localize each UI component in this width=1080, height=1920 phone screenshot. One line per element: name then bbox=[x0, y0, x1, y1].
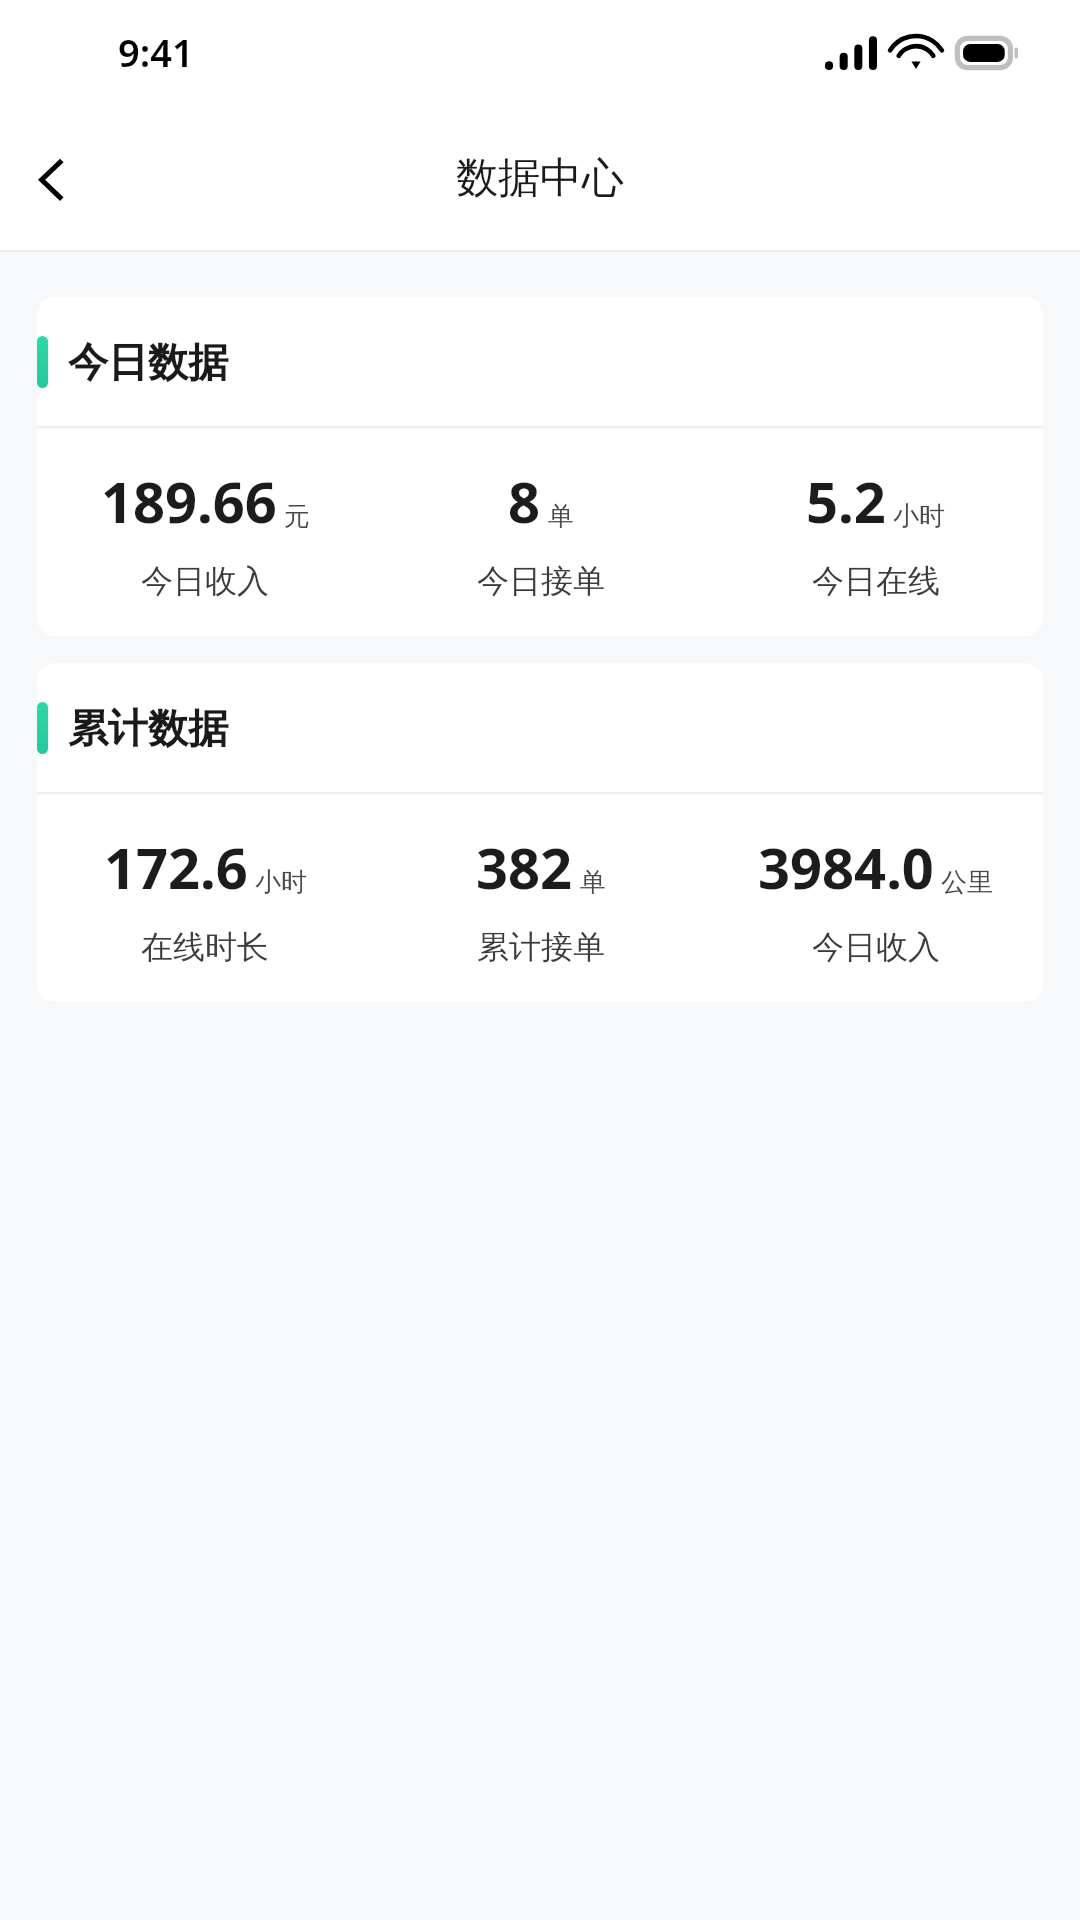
staticText: 8 bbox=[508, 463, 541, 539]
staticText: 今日在线 bbox=[812, 561, 940, 601]
staticText: 累计接单 bbox=[477, 927, 605, 967]
staticText: 今日收入 bbox=[812, 927, 940, 967]
staticText: 小时 bbox=[893, 500, 945, 533]
staticText: 公里 bbox=[941, 866, 993, 899]
staticText: 小时 bbox=[255, 866, 307, 899]
staticText: 单 bbox=[548, 500, 574, 533]
staticText: 5.2 bbox=[806, 463, 886, 539]
staticText: 3984.0 bbox=[758, 829, 934, 905]
staticText: 今日收入 bbox=[141, 561, 269, 601]
staticText: 今日接单 bbox=[477, 561, 605, 601]
staticText: 元 bbox=[284, 500, 310, 533]
staticText: 今日数据 bbox=[68, 337, 228, 387]
staticText: 9:41 bbox=[118, 26, 194, 78]
staticText: 在线时长 bbox=[141, 927, 269, 967]
staticText: 172.6 bbox=[104, 829, 248, 905]
button[interactable]: Back bbox=[10, 137, 94, 221]
button[interactable]: 今日数据 bbox=[37, 297, 1043, 636]
staticText: 累计数据 bbox=[68, 703, 228, 753]
staticText: 单 bbox=[580, 866, 606, 899]
button[interactable]: 累计数据 bbox=[37, 663, 1043, 1002]
staticText: 数据中心 bbox=[456, 152, 624, 205]
staticText: 382 bbox=[476, 829, 573, 905]
staticText: 189.66 bbox=[101, 463, 277, 539]
